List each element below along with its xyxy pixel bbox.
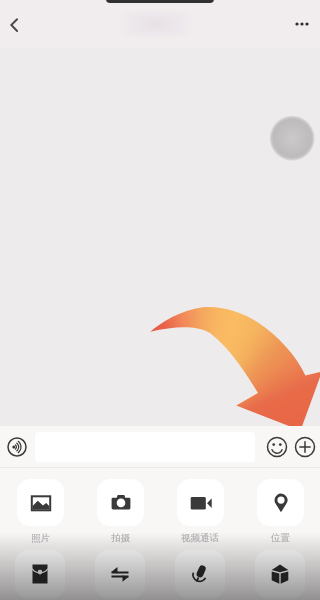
staticText: 照片 bbox=[31, 532, 50, 544]
button[interactable]: 照片 bbox=[0, 479, 80, 526]
button[interactable]: Transfer bbox=[80, 550, 160, 598]
button[interactable]: Voice input bbox=[4, 434, 30, 460]
button[interactable]: 拍摄 bbox=[80, 479, 160, 526]
button[interactable]: More functions bbox=[291, 433, 319, 461]
staticText: 位置 bbox=[271, 532, 290, 544]
button[interactable]: Mini programs bbox=[240, 550, 320, 598]
staticText: 拍摄 bbox=[111, 532, 130, 544]
button[interactable]: Back bbox=[0, 7, 34, 41]
button[interactable]: Red packet bbox=[0, 550, 80, 598]
staticText: 视频通话 bbox=[181, 532, 219, 544]
button[interactable]: 视频通话 bbox=[160, 479, 240, 526]
button[interactable]: More options bbox=[284, 6, 320, 42]
button[interactable]: 位置 bbox=[240, 479, 320, 526]
button[interactable]: Voice input bbox=[160, 550, 240, 598]
button[interactable]: Emoji bbox=[263, 433, 291, 461]
